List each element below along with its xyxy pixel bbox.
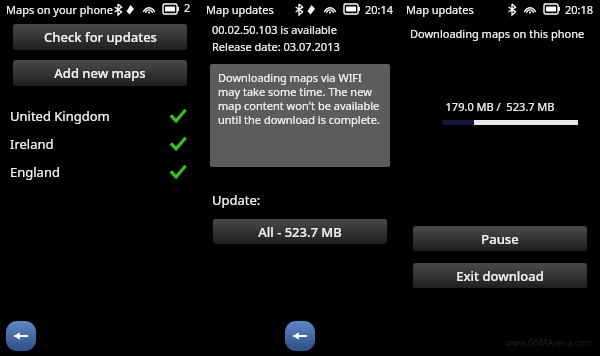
staticText: Downloading maps via WIFI may take some … bbox=[218, 70, 384, 127]
staticText: United Kingdom bbox=[10, 107, 110, 125]
staticText: 20:18 bbox=[565, 2, 594, 17]
button[interactable]: Pause bbox=[413, 226, 587, 251]
button[interactable]: Ireland bbox=[0, 130, 200, 158]
button[interactable]: Back bbox=[6, 321, 36, 351]
button[interactable]: Back bbox=[285, 321, 315, 351]
staticText: 20:14 bbox=[365, 2, 394, 17]
staticText: Release date: 03.07.2013 bbox=[212, 39, 340, 54]
staticText: Map updates bbox=[406, 2, 474, 17]
button[interactable]: All - 523.7 MB bbox=[213, 219, 387, 244]
staticText: All - 523.7 MB bbox=[258, 223, 342, 241]
button[interactable]: Add new maps bbox=[13, 60, 187, 86]
staticText: Update: bbox=[212, 191, 261, 209]
staticText: Maps on your phone bbox=[6, 2, 114, 17]
staticText: www.GSMArena.com bbox=[505, 336, 594, 348]
staticText: Downloading maps on this phone bbox=[410, 26, 585, 41]
staticText: Exit download bbox=[456, 267, 544, 285]
button[interactable]: Exit download bbox=[413, 263, 587, 288]
staticText: Add new maps bbox=[54, 64, 146, 82]
staticText: 00.02.50.103 is available bbox=[212, 22, 337, 37]
staticText: Check for updates bbox=[44, 28, 157, 46]
staticText: Ireland bbox=[10, 135, 54, 153]
button[interactable]: United Kingdom bbox=[0, 102, 200, 130]
staticText: 20:13 bbox=[184, 0, 194, 18]
button[interactable]: Check for updates bbox=[13, 24, 187, 50]
staticText: Pause bbox=[481, 230, 519, 248]
staticText: England bbox=[10, 163, 60, 181]
button[interactable]: England bbox=[0, 158, 200, 186]
staticText: 179.0 MB / 523.7 MB bbox=[400, 99, 600, 114]
staticText: Map updates bbox=[206, 2, 274, 17]
